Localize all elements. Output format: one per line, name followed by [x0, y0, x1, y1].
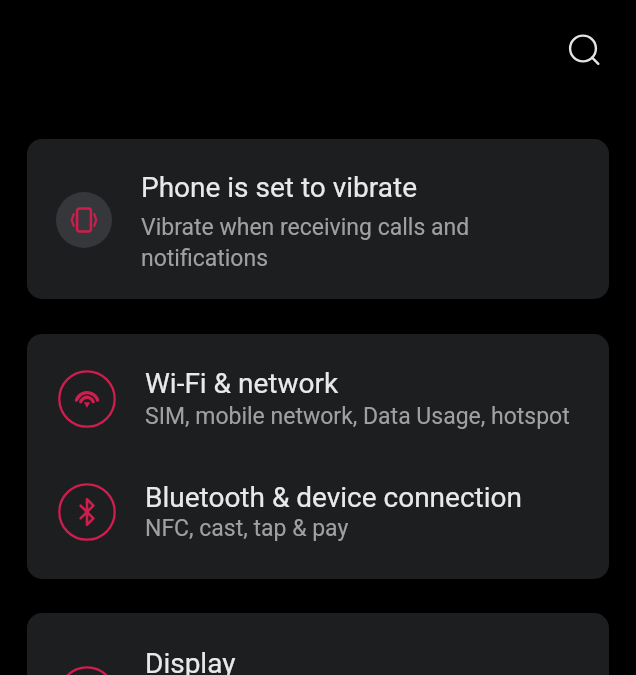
staticText: NFC, cast, tap & pay [145, 515, 349, 542]
staticText: Phone is set to vibrate [141, 171, 417, 204]
button[interactable]: Display [27, 613, 609, 675]
button[interactable]: Bluetooth & device connection [27, 455, 609, 571]
button[interactable]: Search [559, 24, 607, 72]
staticText: Bluetooth & device connection [145, 481, 522, 514]
staticText: SIM, mobile network, Data Usage, hotspot [145, 403, 570, 430]
staticText: Wi-Fi & network [145, 367, 339, 400]
staticText: Display [145, 647, 236, 675]
staticText: Vibrate when receiving calls and notific… [141, 214, 481, 271]
button[interactable]: Wi-Fi & network [27, 342, 609, 455]
button[interactable]: Phone is set to vibrate [27, 139, 609, 299]
